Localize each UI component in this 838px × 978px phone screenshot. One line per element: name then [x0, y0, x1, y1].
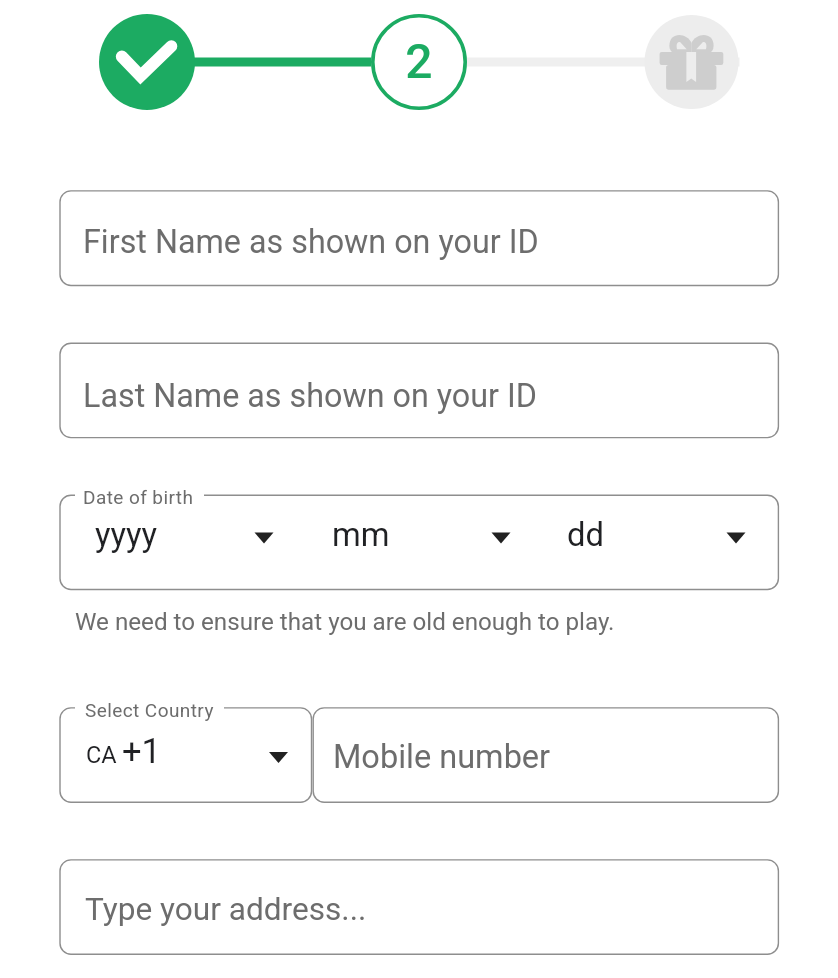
staticText: dd: [567, 516, 604, 554]
button[interactable]: Type your address: [60, 860, 778, 954]
staticText: First Name as shown on your ID: [83, 223, 539, 261]
staticText: CA: [86, 741, 117, 769]
button[interactable]: Step 3, claim your reward: [644, 14, 740, 110]
staticText: Last Name as shown on your ID: [83, 377, 537, 415]
staticText: Date of birth: [83, 486, 194, 508]
button[interactable]: Date of birth: [60, 495, 778, 589]
button[interactable]: Step 2, personal details, current step: [371, 14, 467, 110]
button[interactable]: Step 1, identity, completed: [99, 14, 195, 110]
staticText: yyyy: [95, 516, 158, 554]
button[interactable]: Last Name as shown on your ID: [60, 343, 778, 437]
button[interactable]: Select Country, C A plus 1: [60, 708, 312, 802]
button[interactable]: Mobile number: [313, 708, 778, 802]
staticText: We need to ensure that you are old enoug…: [75, 608, 615, 636]
staticText: Mobile number: [333, 738, 551, 776]
staticText: +1: [122, 731, 161, 771]
button[interactable]: First Name as shown on your ID: [60, 191, 778, 286]
staticText: mm: [332, 516, 390, 554]
staticText: 2: [379, 33, 459, 978]
staticText: Select Country: [85, 699, 214, 721]
staticText: Type your address...: [85, 891, 367, 928]
